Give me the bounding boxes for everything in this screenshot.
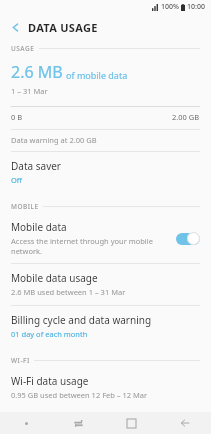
button[interactable]: Wi-Fi data usage [0,367,211,408]
button[interactable]: Data saver [0,152,211,193]
button[interactable]: Data warning at 2.00 GB [0,130,211,151]
staticText: Data saver [11,159,61,173]
staticText: 2.00 GB [172,112,200,122]
staticText: Access the internet through your mobile … [11,236,168,256]
staticText: Mobile data [11,220,67,234]
staticText: 10:00 [187,2,205,12]
staticText: 2.6 MB used between 1 – 31 Mar [11,287,126,297]
staticText: Wi-Fi data usage [11,374,89,388]
staticText: 0 B [11,112,23,122]
staticText: Off [11,175,23,185]
staticText: Data warning at 2.00 GB [11,135,97,145]
staticText: 2.6 MB [11,61,63,83]
staticText: 1 – 31 Mar [11,86,48,96]
button[interactable]: Mobile data usage [0,264,211,305]
staticText: of mobile data [66,69,128,81]
button[interactable]: 2.6 MB [0,55,211,126]
staticText: USAGE [11,44,35,53]
staticText: 01 day of each month [11,329,88,339]
button[interactable]: Home [105,412,158,434]
button[interactable]: Back [5,17,25,37]
button[interactable]: Recents [52,412,105,434]
button[interactable]: Mobile data toggle [176,232,200,245]
staticText: WI-FI [11,356,30,365]
button[interactable]: Billing cycle and data warning [0,306,211,347]
staticText: 0.95 GB used between 12 Feb – 12 Mar [11,390,148,400]
button[interactable]: Mobile data [0,213,211,263]
staticText: Billing cycle and data warning [11,313,152,327]
button[interactable]: Assistant [0,412,52,434]
staticText: Mobile data usage [11,271,98,285]
staticText: 100% [161,2,179,12]
button[interactable]: Back [158,412,211,434]
staticText: MOBILE [11,202,39,211]
staticText: DATA USAGE [28,20,98,35]
